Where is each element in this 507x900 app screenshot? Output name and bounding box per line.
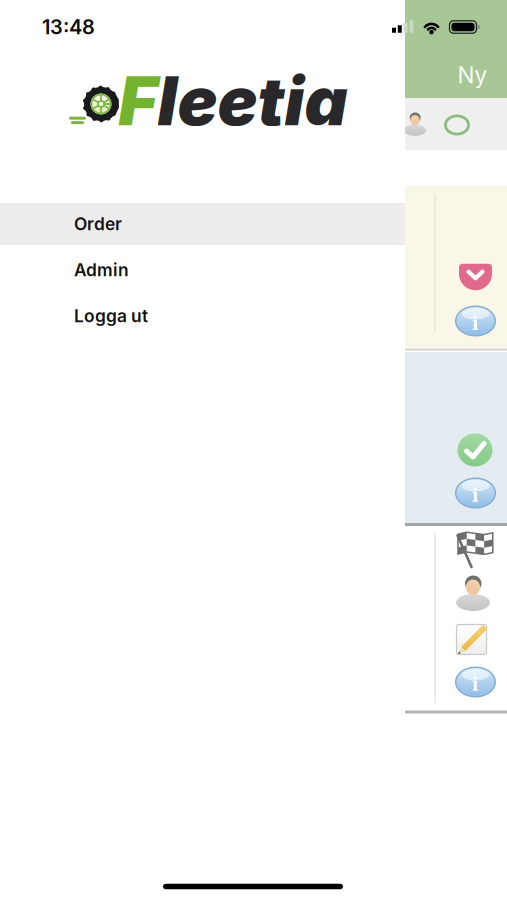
button[interactable]: Done — [457, 433, 492, 466]
button[interactable]: Info — [455, 305, 496, 336]
button[interactable]: Archive — [459, 264, 492, 290]
button[interactable]: Info — [455, 477, 496, 508]
button[interactable]: Info — [455, 666, 496, 697]
staticText: Ny — [457, 61, 487, 89]
button[interactable]: Driver — [455, 573, 491, 612]
staticText: i — [472, 671, 479, 696]
staticText: 13:48 — [42, 15, 95, 39]
staticText: i — [472, 310, 479, 335]
staticText: Order — [74, 213, 122, 234]
button[interactable]: Finish — [453, 530, 497, 568]
staticText: i — [472, 482, 479, 507]
button[interactable]: Filter — [444, 114, 470, 135]
staticText: Logga ut — [74, 305, 148, 326]
button[interactable]: Admin — [0, 248, 405, 292]
button[interactable]: Edit — [456, 621, 490, 655]
button[interactable]: Logga ut — [0, 294, 405, 338]
button[interactable]: Ny — [457, 61, 487, 89]
staticText: Admin — [74, 259, 129, 280]
staticText: leetia — [157, 61, 347, 141]
staticText: F — [118, 61, 157, 141]
button[interactable]: Order — [0, 203, 405, 245]
button[interactable]: Driver filter — [397, 104, 433, 143]
